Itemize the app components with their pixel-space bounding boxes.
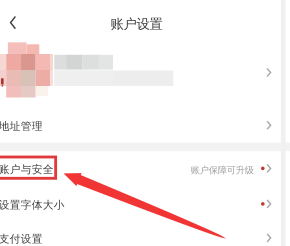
button[interactable]: 设置字体大小 bbox=[0, 186, 290, 222]
button[interactable]: 支付设置 bbox=[0, 222, 290, 246]
button[interactable]: 地址管理 bbox=[0, 109, 290, 143]
staticText: 设置字体大小 bbox=[0, 198, 65, 212]
staticText: 支付设置 bbox=[0, 232, 43, 246]
staticText: 账户设置 bbox=[110, 16, 162, 32]
staticText: 地址管理 bbox=[0, 119, 43, 133]
staticText: 账户与安全 bbox=[0, 163, 54, 176]
button[interactable]: 账户与安全 bbox=[0, 151, 290, 186]
button[interactable]: 返回 bbox=[0, 8, 26, 38]
button[interactable] bbox=[0, 36, 290, 109]
staticText: 账户保障可升级 bbox=[191, 164, 254, 176]
